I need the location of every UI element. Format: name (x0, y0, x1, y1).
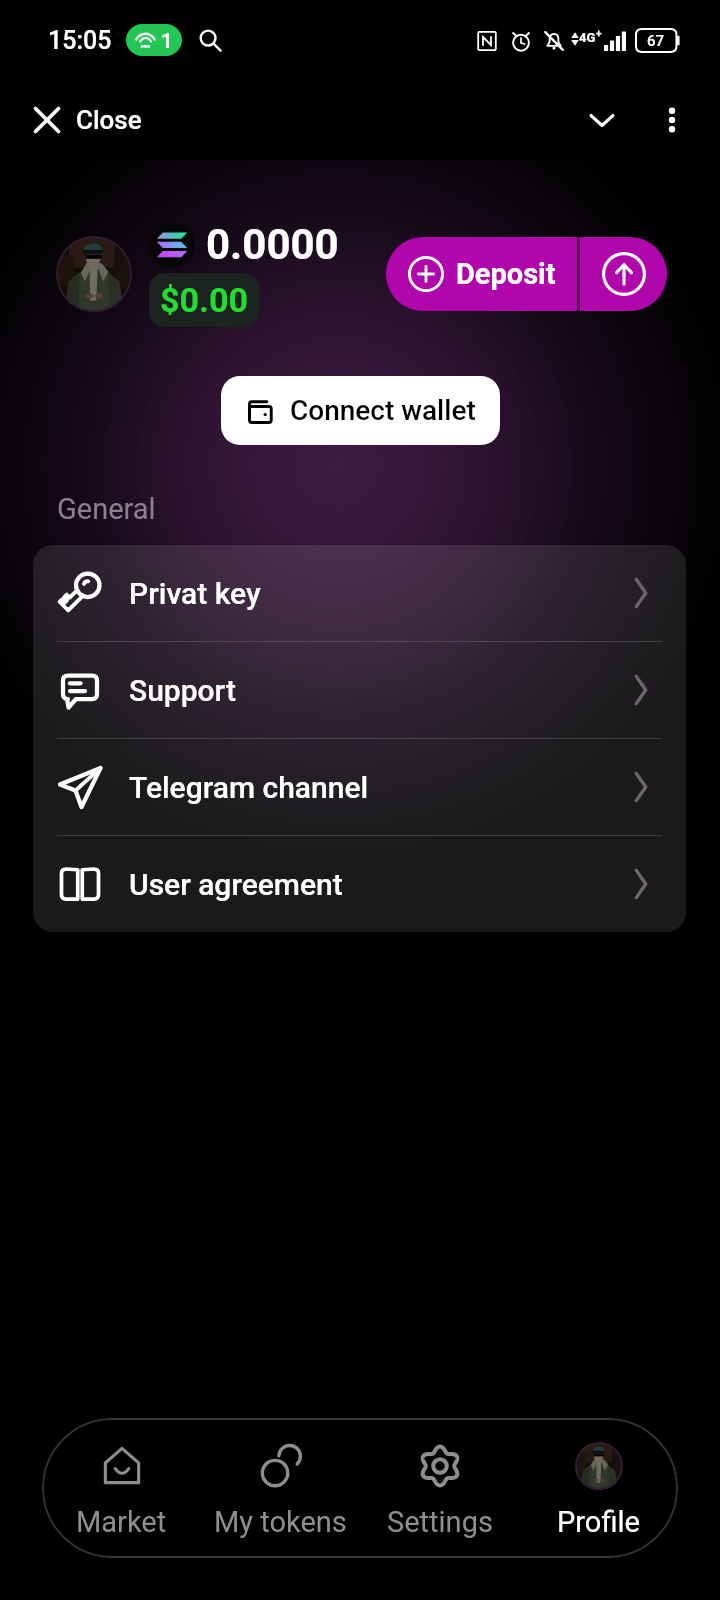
staticText: 15:05 (48, 26, 112, 55)
button[interactable]: Settings (360, 1418, 519, 1558)
button[interactable]: More options (644, 92, 700, 148)
staticText: + (596, 28, 602, 40)
button[interactable] (56, 236, 132, 312)
button[interactable]: Profile (519, 1418, 678, 1558)
staticText: General (57, 492, 156, 526)
button[interactable]: Telegram channel (33, 739, 686, 835)
staticText: User agreement (129, 867, 343, 902)
button[interactable]: Withdraw (580, 237, 667, 311)
button[interactable]: Privat key (33, 545, 686, 641)
staticText: Connect wallet (290, 394, 476, 427)
staticText: Settings (387, 1505, 493, 1539)
staticText: 1 (161, 29, 173, 52)
button[interactable]: My tokens (201, 1418, 360, 1558)
button[interactable]: Support (33, 642, 686, 738)
staticText: 67 (647, 32, 665, 50)
button[interactable]: Collapse (574, 92, 630, 148)
staticText: Privat key (129, 576, 261, 611)
staticText: Deposit (456, 257, 556, 291)
staticText: $0.00 (160, 280, 248, 320)
button[interactable]: Market (42, 1418, 201, 1558)
staticText: 4G (579, 30, 596, 45)
button[interactable]: User agreement (33, 836, 686, 932)
button[interactable]: Connect wallet (221, 376, 500, 445)
button[interactable]: Close (23, 96, 150, 144)
staticText: Telegram channel (129, 770, 369, 805)
staticText: My tokens (214, 1505, 347, 1539)
staticText: Support (129, 673, 236, 708)
staticText: Market (76, 1505, 167, 1539)
staticText: 0.0000 (206, 220, 339, 269)
staticText: Profile (557, 1505, 640, 1539)
staticText: Close (76, 105, 142, 135)
button[interactable]: Deposit (386, 237, 577, 311)
